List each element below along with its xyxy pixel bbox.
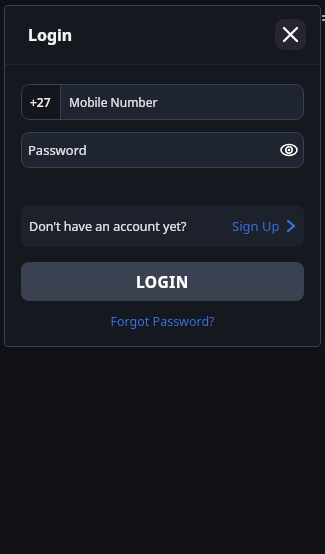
staticText: LOGIN — [136, 271, 189, 292]
button[interactable] — [275, 19, 306, 50]
staticText: Forgot Password? — [110, 313, 215, 330]
staticText: Mobile Number — [69, 94, 158, 110]
button[interactable]: +27 — [21, 84, 304, 120]
button[interactable]: Password — [21, 132, 304, 168]
staticText: Login — [28, 24, 73, 46]
button[interactable] — [281, 144, 297, 156]
button[interactable]: LOGIN — [21, 262, 304, 301]
staticText: Password — [28, 141, 87, 159]
staticText: Sign Up — [232, 217, 280, 235]
button[interactable]: Don't have an account yet? — [21, 205, 304, 247]
staticText: Don't have an account yet? — [29, 218, 187, 235]
button[interactable]: Forgot Password? — [4, 313, 321, 330]
staticText: +27 — [30, 94, 51, 110]
